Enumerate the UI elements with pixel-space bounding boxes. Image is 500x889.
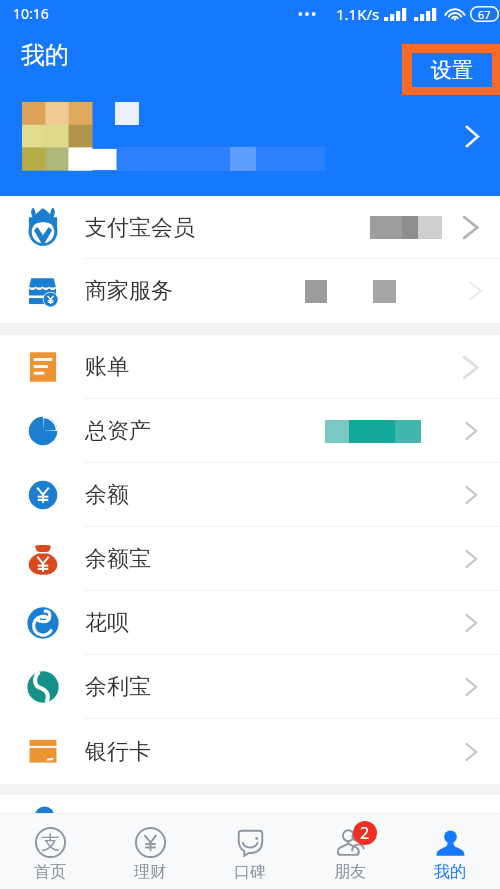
- staticText: 首页: [34, 862, 66, 882]
- button[interactable]: 账单: [0, 335, 500, 399]
- staticText: 口碑: [234, 862, 266, 882]
- staticText: 10:16: [13, 4, 49, 23]
- staticText: 余额: [85, 481, 129, 509]
- button[interactable]: 我的: [400, 814, 500, 889]
- button[interactable]: 支付宝会员: [0, 196, 500, 259]
- button[interactable]: 2: [300, 814, 400, 889]
- button[interactable]: 余利宝: [0, 655, 500, 719]
- staticText: 我的: [434, 862, 466, 882]
- staticText: 支: [41, 831, 60, 855]
- button[interactable]: 商家服务: [0, 259, 500, 323]
- button[interactable]: 花呗: [0, 591, 500, 655]
- staticText: 我的: [21, 40, 69, 70]
- staticText: 余利宝: [85, 673, 151, 701]
- button[interactable]: 总资产: [0, 399, 500, 463]
- staticText: 67: [478, 7, 491, 22]
- button[interactable]: 理财: [100, 814, 200, 889]
- staticText: 朋友: [334, 862, 366, 882]
- staticText: 支付宝会员: [85, 214, 195, 242]
- staticText: 账单: [85, 353, 129, 381]
- staticText: 总资产: [85, 417, 151, 445]
- button[interactable]: 余额: [0, 463, 500, 527]
- button[interactable]: 设置: [402, 44, 500, 95]
- staticText: 1.1K/s: [336, 4, 380, 24]
- button[interactable]: 余额宝: [0, 527, 500, 591]
- staticText: 理财: [134, 862, 166, 882]
- button[interactable]: 支: [0, 814, 100, 889]
- staticText: 设置: [431, 57, 473, 83]
- staticText: 商家服务: [85, 277, 173, 305]
- staticText: 花呗: [85, 609, 129, 637]
- button[interactable]: 口碑: [200, 814, 300, 889]
- staticText: 银行卡: [85, 738, 151, 766]
- staticText: 余额宝: [85, 545, 151, 573]
- button[interactable]: 银行卡: [0, 719, 500, 784]
- staticText: 2: [360, 822, 370, 844]
